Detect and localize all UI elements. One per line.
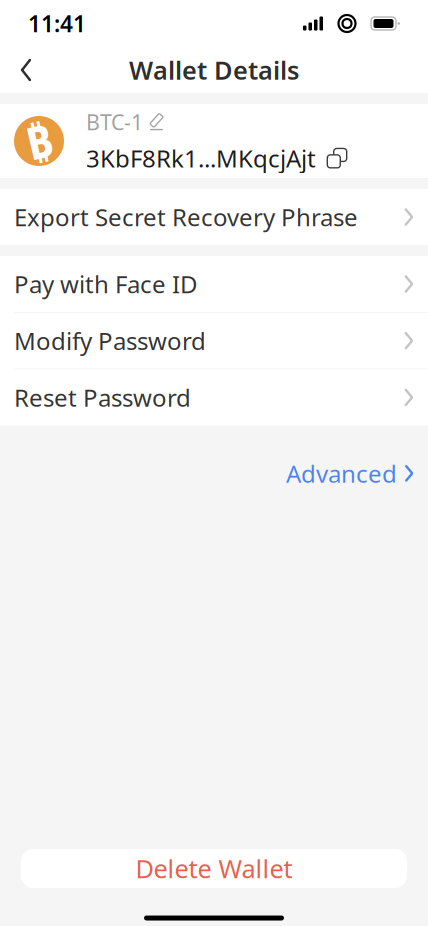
button[interactable]: Modify Password — [0, 313, 428, 369]
staticText: 11:41 — [28, 8, 86, 38]
button[interactable]: Pay with Face ID — [0, 256, 428, 312]
staticText: Modify Password — [14, 325, 206, 357]
button[interactable]: Back — [4, 48, 48, 92]
staticText: Reset Password — [14, 381, 191, 413]
button[interactable]: Rename wallet — [86, 108, 164, 136]
staticText: Export Secret Recovery Phrase — [14, 201, 358, 233]
staticText: Wallet Details — [129, 53, 299, 87]
button[interactable]: Copy address — [326, 147, 348, 169]
button[interactable]: Advanced — [272, 443, 428, 503]
staticText: BTC-1 — [86, 108, 143, 136]
staticText: 3KbF8Rk1...MKqcjAjt — [86, 142, 316, 174]
button[interactable]: Reset Password — [0, 369, 428, 425]
button[interactable]: Export Secret Recovery Phrase — [0, 189, 428, 245]
button[interactable]: Delete Wallet — [21, 849, 407, 888]
staticText: Pay with Face ID — [14, 268, 198, 300]
staticText: ₿ — [26, 111, 52, 171]
staticText: Delete Wallet — [135, 852, 292, 885]
staticText: Advanced — [286, 457, 397, 489]
